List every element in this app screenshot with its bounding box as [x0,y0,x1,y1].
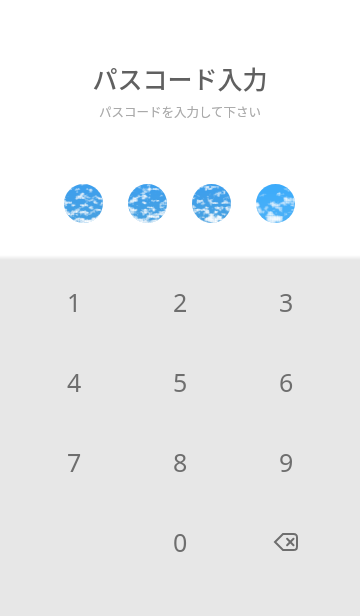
staticText: パスコードを入力して下さい [0,102,360,120]
staticText: 9 [279,445,294,479]
staticText: 5 [173,365,188,399]
button[interactable]: 3 [233,262,339,342]
staticText: 8 [173,445,188,479]
button[interactable]: 4 [21,342,127,422]
staticText: 3 [279,285,294,319]
button[interactable]: 8 [127,422,233,502]
button[interactable]: Delete [233,502,339,582]
staticText: 6 [279,365,294,399]
button[interactable]: 7 [21,422,127,502]
staticText: 2 [173,285,188,319]
button[interactable]: 1 [21,262,127,342]
staticText: 7 [67,445,82,479]
button[interactable]: 0 [127,502,233,582]
button[interactable]: 9 [233,422,339,502]
staticText: 0 [173,525,188,559]
staticText: パスコード入力 [0,60,360,96]
staticText: 1 [67,285,82,319]
staticText: 4 [67,365,82,399]
button[interactable]: 2 [127,262,233,342]
button[interactable]: 5 [127,342,233,422]
button[interactable]: 6 [233,342,339,422]
